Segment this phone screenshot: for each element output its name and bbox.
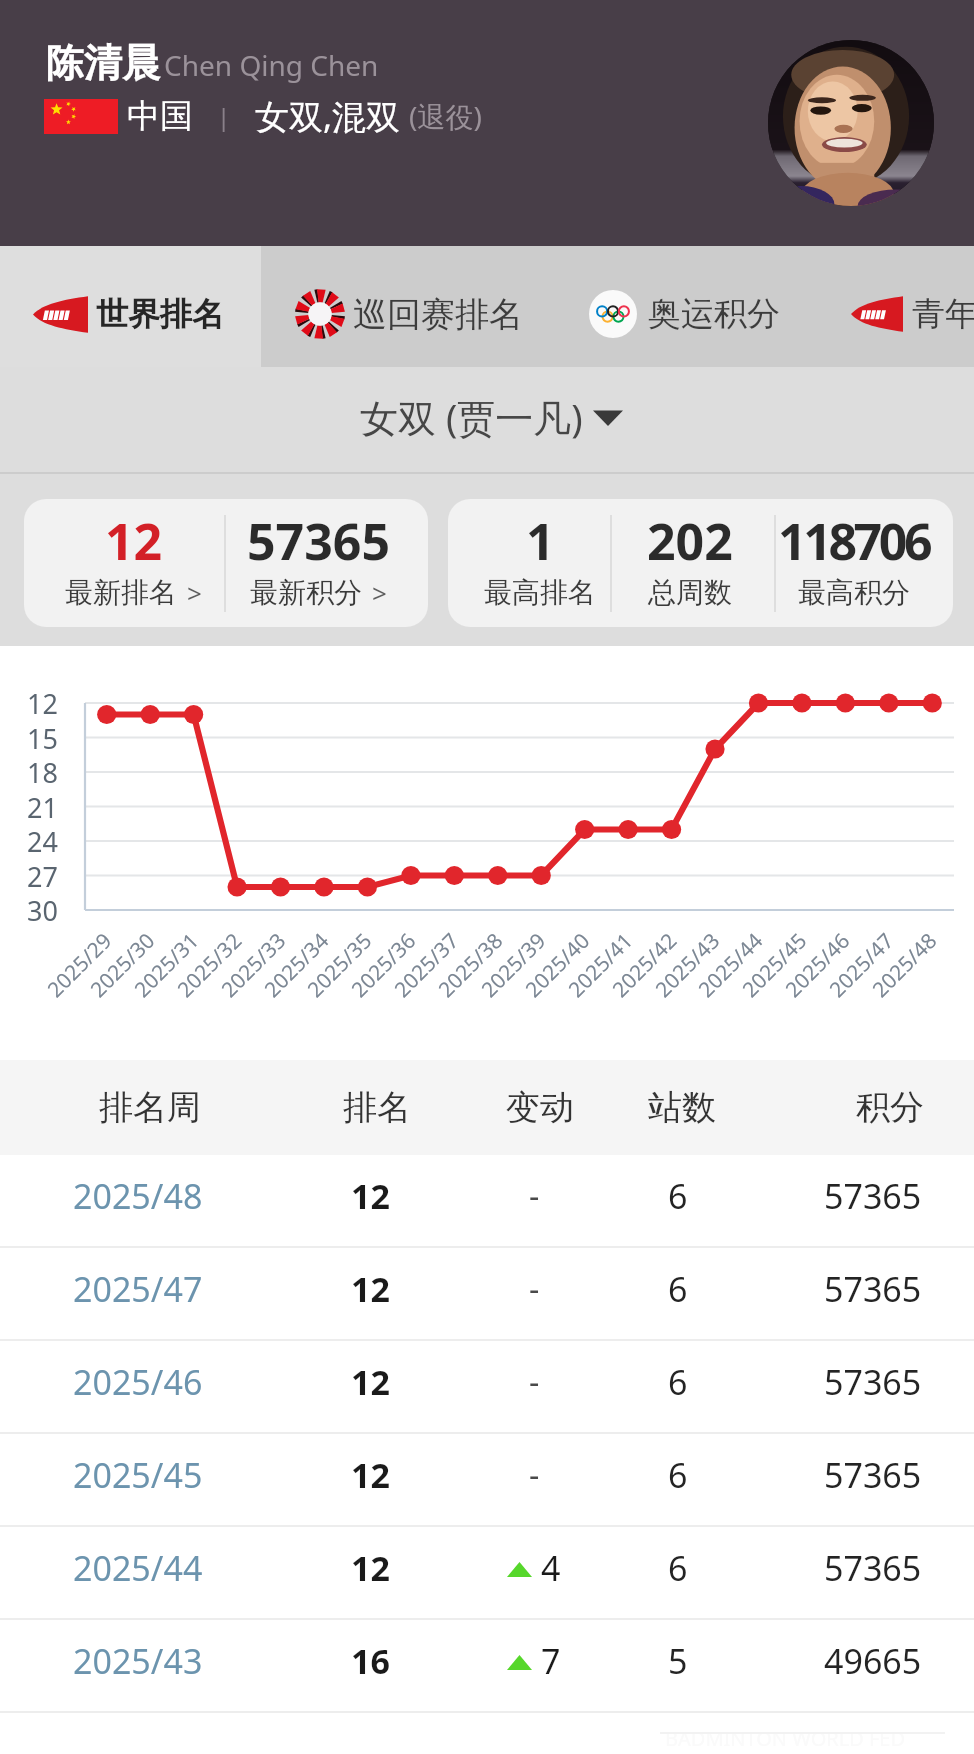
staticText: 49665 xyxy=(824,1638,922,1684)
staticText: 57365 xyxy=(824,1452,922,1498)
staticText: 积分 xyxy=(856,1086,924,1129)
staticText: 57365 xyxy=(247,507,390,575)
button[interactable]: 2025/48 xyxy=(0,1155,974,1248)
staticText: 2025/46 xyxy=(73,1359,203,1405)
staticText: - xyxy=(529,1453,540,1497)
staticText: 排名周 xyxy=(99,1086,201,1129)
staticText: > xyxy=(372,575,387,610)
button[interactable]: 1 xyxy=(430,499,650,627)
staticText: 变动 xyxy=(506,1086,574,1129)
staticText: 21 xyxy=(27,789,58,826)
staticText: 女双,混双 xyxy=(255,93,401,139)
button[interactable]: 青年 xyxy=(851,292,974,336)
staticText: BADMINTON WORLD FED xyxy=(665,1725,906,1752)
staticText: 排名 xyxy=(343,1086,411,1129)
staticText: 5 xyxy=(668,1638,688,1684)
staticText: 最高积分 xyxy=(798,575,910,610)
staticText: 6 xyxy=(668,1173,688,1219)
staticText: 2025/34 xyxy=(258,927,335,1004)
staticText: 最新排名 xyxy=(65,575,177,610)
button[interactable] xyxy=(0,246,261,367)
staticText: 总周数 xyxy=(648,575,732,610)
staticText: 2025/40 xyxy=(519,927,596,1004)
staticText: 站数 xyxy=(648,1086,716,1129)
staticText: 2025/47 xyxy=(823,927,900,1004)
staticText: 2025/31 xyxy=(128,927,205,1004)
staticText: - xyxy=(529,1267,540,1311)
staticText: > xyxy=(187,575,202,610)
staticText: 2025/32 xyxy=(171,927,248,1004)
staticText: 18 xyxy=(27,754,58,791)
button[interactable]: 118706 xyxy=(744,499,964,627)
button[interactable]: 2025/44 xyxy=(0,1527,974,1620)
staticText: 2025/43 xyxy=(649,927,726,1004)
staticText: 2025/41 xyxy=(562,927,639,1004)
staticText: 16 xyxy=(351,1638,390,1684)
button[interactable]: 奥运积分 xyxy=(589,290,789,338)
staticText: 2025/39 xyxy=(475,927,552,1004)
staticText: 6 xyxy=(668,1266,688,1312)
staticText: 2025/47 xyxy=(73,1266,203,1312)
staticText: 奥运积分 xyxy=(648,293,780,335)
button[interactable]: Player photo xyxy=(768,40,934,206)
staticText: 57365 xyxy=(824,1266,922,1312)
staticText: 最新积分 xyxy=(250,575,362,610)
button[interactable]: 2025/43 xyxy=(0,1620,974,1713)
staticText: 2025/46 xyxy=(779,927,856,1004)
staticText: 6 xyxy=(668,1545,688,1591)
staticText: 2025/43 xyxy=(73,1638,203,1684)
staticText: - xyxy=(529,1174,540,1218)
staticText: 青年 xyxy=(912,293,974,335)
staticText: 6 xyxy=(668,1452,688,1498)
staticText: 陈清晨 xyxy=(46,39,160,87)
button[interactable]: 2025/47 xyxy=(0,1248,974,1341)
staticText: 世界排名 xyxy=(96,294,224,334)
staticText: - xyxy=(529,1360,540,1404)
staticText: 12 xyxy=(351,1359,390,1405)
button[interactable]: 2025/45 xyxy=(0,1434,974,1527)
staticText: 1 xyxy=(526,507,555,575)
staticText: 2025/44 xyxy=(692,927,769,1004)
staticText: 2025/42 xyxy=(606,927,683,1004)
staticText: 12 xyxy=(105,507,163,575)
staticText: 2025/35 xyxy=(301,927,378,1004)
staticText: 6 xyxy=(668,1359,688,1405)
staticText: 2025/48 xyxy=(866,927,943,1004)
staticText: 2025/29 xyxy=(41,927,118,1004)
staticText: 12 xyxy=(351,1173,390,1219)
staticText: 2025/33 xyxy=(215,927,292,1004)
staticText: 12 xyxy=(351,1452,390,1498)
staticText: (退役) xyxy=(409,97,482,135)
button[interactable]: 女双 (贾一凡) xyxy=(0,367,974,472)
staticText: 2025/30 xyxy=(84,927,161,1004)
button[interactable]: 世界排名 xyxy=(33,292,233,336)
staticText: 2025/38 xyxy=(432,927,509,1004)
staticText: 57365 xyxy=(824,1545,922,1591)
staticText: 4 xyxy=(541,1545,561,1591)
button[interactable]: 57365 xyxy=(208,499,428,627)
staticText: 202 xyxy=(647,507,733,575)
button[interactable]: 12 xyxy=(23,499,243,627)
staticText: 24 xyxy=(27,823,58,860)
staticText: 12 xyxy=(27,685,58,722)
staticText: 30 xyxy=(27,892,58,929)
button[interactable]: 巡回赛排名 xyxy=(295,289,535,339)
staticText: 12 xyxy=(351,1545,390,1591)
staticText: 2025/37 xyxy=(388,927,465,1004)
staticText: 女双 (贾一凡) xyxy=(360,391,583,443)
staticText: | xyxy=(217,100,231,133)
staticText: 2025/45 xyxy=(736,927,813,1004)
staticText: Chen Qing Chen xyxy=(164,46,379,84)
staticText: 12 xyxy=(351,1266,390,1312)
staticText: 27 xyxy=(27,858,58,895)
staticText: 2025/45 xyxy=(73,1452,203,1498)
staticText: 2025/48 xyxy=(73,1173,203,1219)
staticText: 2025/36 xyxy=(345,927,422,1004)
button[interactable]: 2025/46 xyxy=(0,1341,974,1434)
staticText: 中国 xyxy=(127,95,193,137)
staticText: 118706 xyxy=(778,507,930,575)
button[interactable]: 202 xyxy=(580,499,800,627)
staticText: 最高排名 xyxy=(484,575,596,610)
staticText: 7 xyxy=(541,1638,561,1684)
staticText: 57365 xyxy=(824,1173,922,1219)
